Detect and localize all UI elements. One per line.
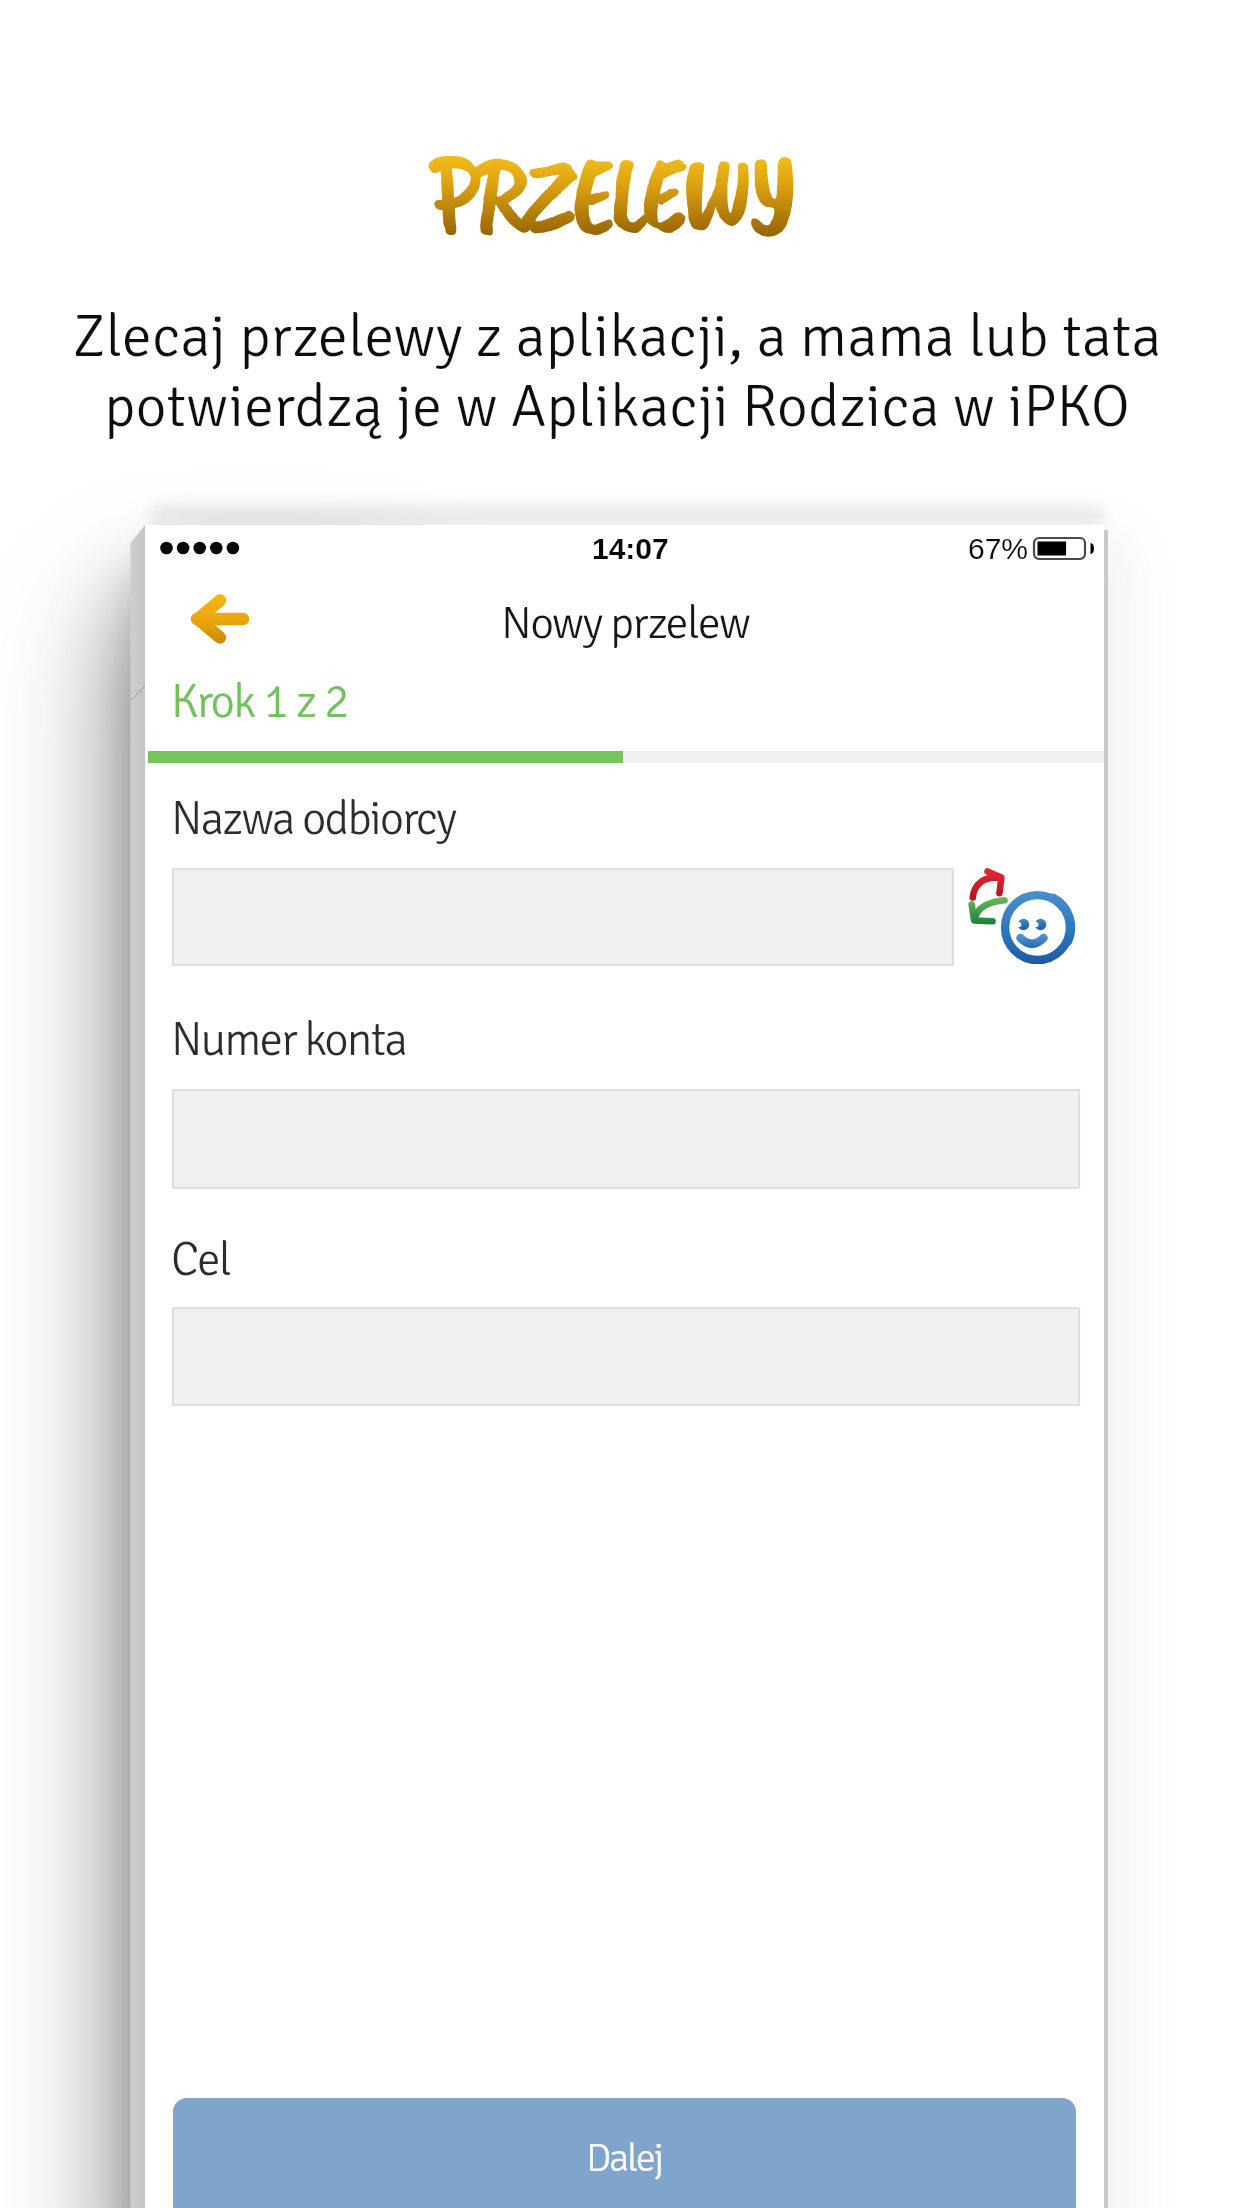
button[interactable]: Pick contact [957,859,1091,975]
staticText: Zlecaj przelewy z aplikacji, a mama lub … [72,300,1162,444]
button[interactable]: Dalej [173,2098,1076,2208]
staticText: Numer konta [171,1011,407,1069]
button[interactable]: Back [178,583,262,655]
staticText: Nowy przelew [501,595,750,652]
staticText: 14:07 [592,532,669,566]
staticText: Krok 1 z 2 [171,673,348,731]
staticText: PRZELEWY [429,125,792,264]
staticText: Nazwa odbiorcy [171,790,456,848]
staticText: 67% [968,532,1029,566]
staticText: Dalej [586,2133,663,2182]
staticText: Cel [171,1231,230,1289]
